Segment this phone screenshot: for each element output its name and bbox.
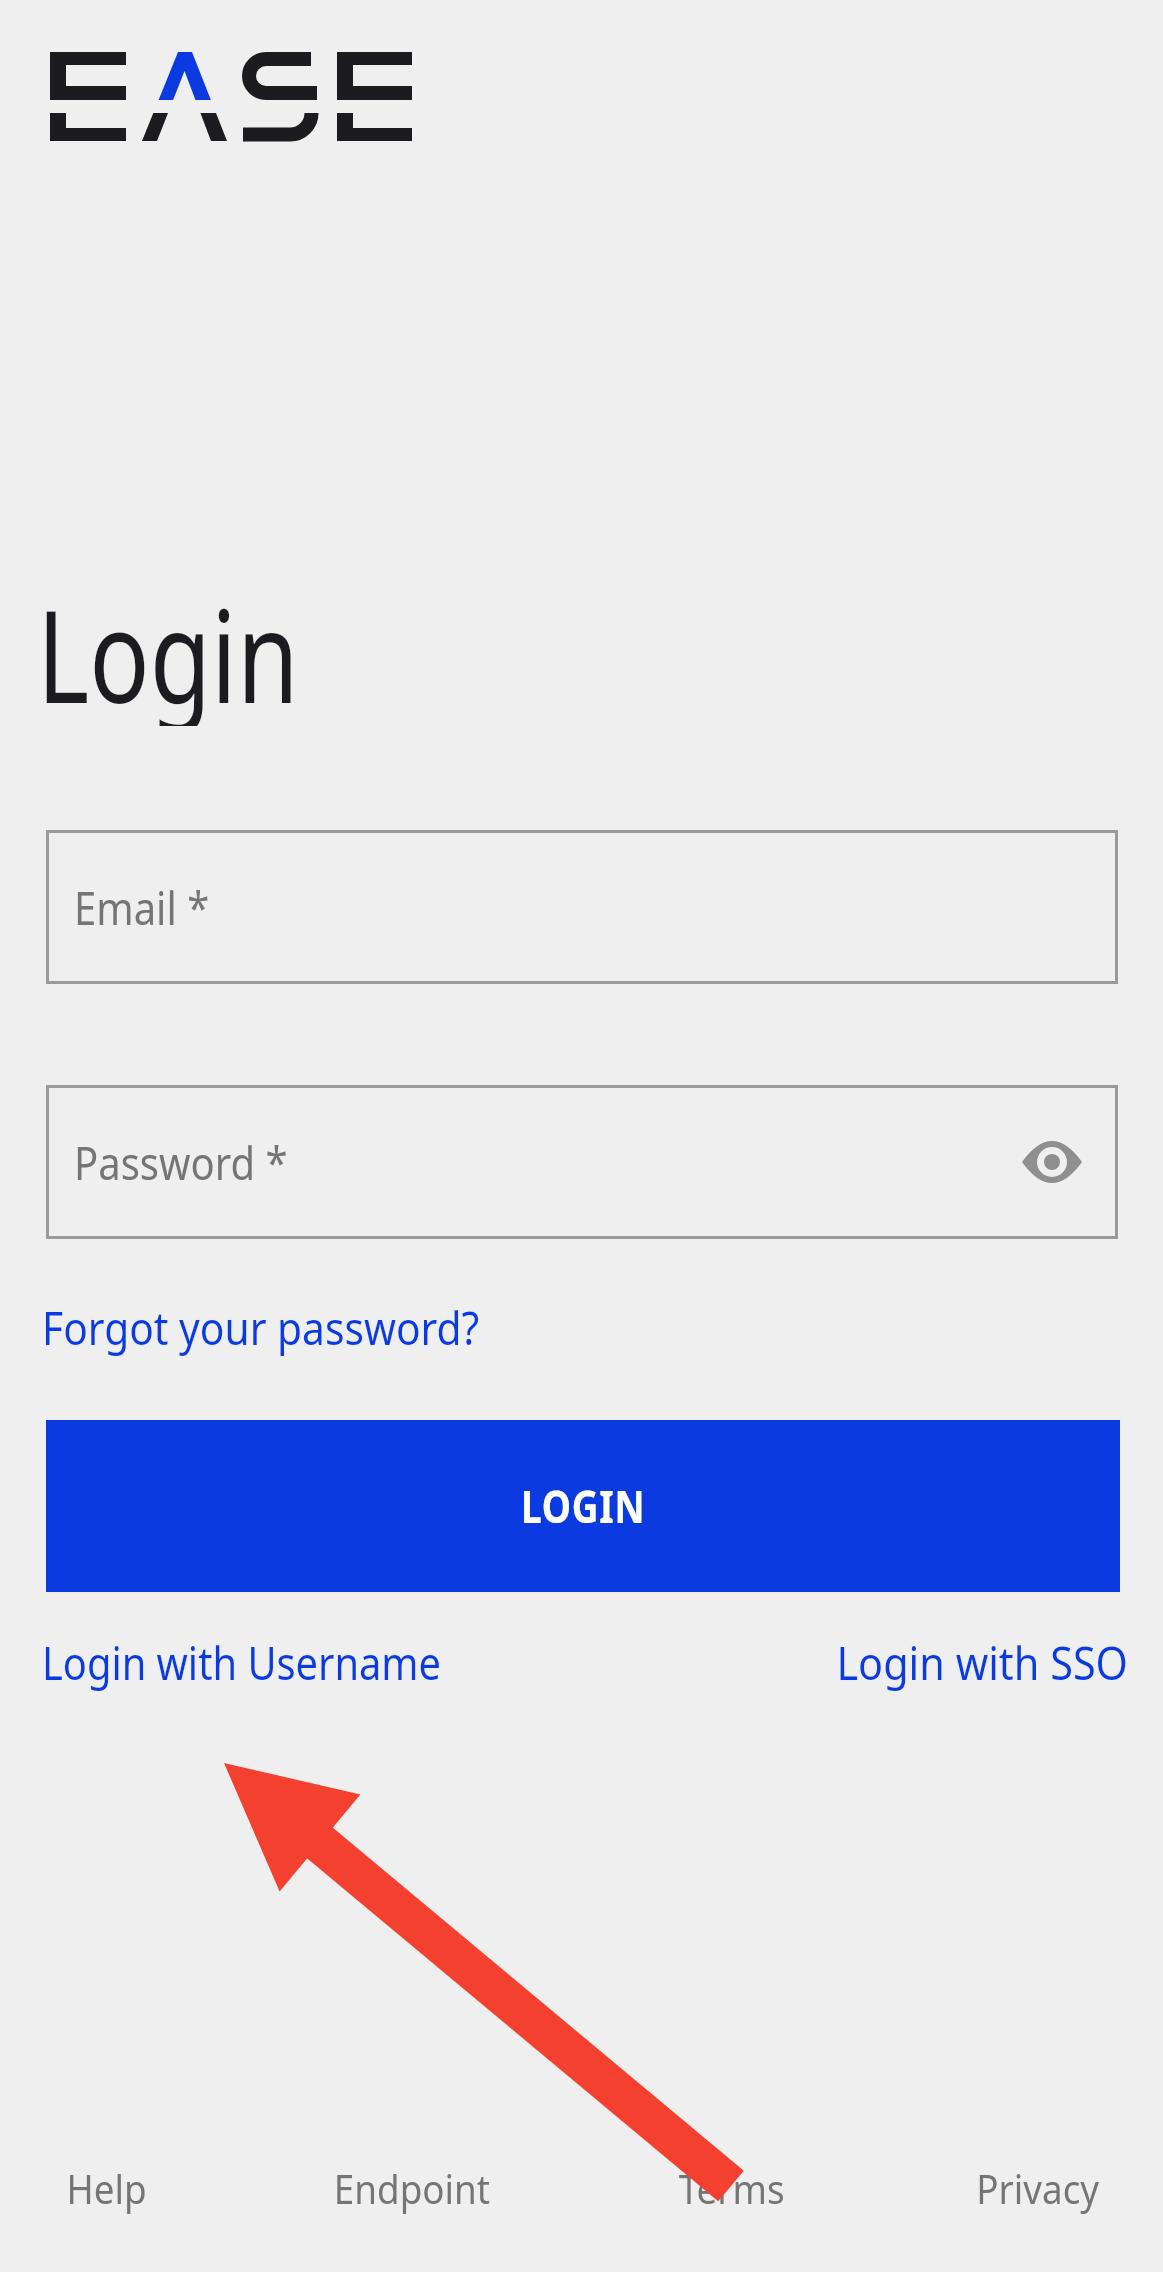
button[interactable]: Login with SSO bbox=[690, 1631, 1128, 1691]
button[interactable]: Terms bbox=[625, 2160, 839, 2216]
staticText: Login bbox=[37, 566, 299, 726]
staticText: Login with SSO bbox=[836, 1631, 1128, 1691]
button[interactable]: Help bbox=[0, 2160, 214, 2216]
staticText: LOGIN bbox=[521, 1476, 646, 1536]
staticText: Email * bbox=[74, 876, 210, 939]
button[interactable]: Login with Username bbox=[42, 1631, 562, 1691]
button[interactable]: Privacy bbox=[931, 2160, 1145, 2216]
staticText: Forgot your password? bbox=[42, 1296, 480, 1356]
staticText: Login with Username bbox=[42, 1631, 442, 1691]
button[interactable]: Forgot your password? bbox=[42, 1296, 602, 1356]
staticText: Terms bbox=[679, 2161, 785, 2215]
button[interactable]: Email * bbox=[46, 830, 1118, 984]
staticText: Help bbox=[66, 2161, 147, 2215]
staticText: Password * bbox=[74, 1131, 288, 1194]
button[interactable]: Password * bbox=[46, 1085, 1118, 1239]
button[interactable]: Endpoint bbox=[305, 2160, 519, 2216]
staticText: Endpoint bbox=[334, 2161, 490, 2215]
staticText: Privacy bbox=[976, 2161, 1100, 2215]
button[interactable]: LOGIN bbox=[46, 1420, 1120, 1592]
